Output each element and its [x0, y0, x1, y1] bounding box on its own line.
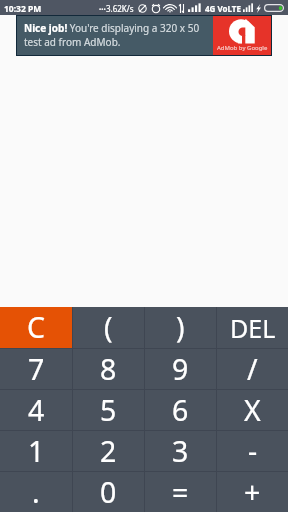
button[interactable]: + [217, 472, 288, 512]
staticText: 4G VoLTE [205, 3, 241, 14]
staticText: test ad from AdMob. [24, 35, 121, 49]
staticText: 10:32 PM [4, 3, 42, 15]
staticText: ) [176, 308, 185, 347]
staticText: . [32, 473, 40, 512]
button[interactable]: 5 [73, 390, 144, 430]
staticText: 4 [28, 391, 45, 430]
staticText: 6 [172, 391, 189, 430]
button[interactable]: - [217, 431, 288, 471]
staticText: Nice job! You're displaying a 320 x 50 [24, 21, 200, 35]
staticText: + [244, 473, 261, 512]
button[interactable]: 4 [0, 390, 72, 430]
staticText: DEL [230, 311, 276, 345]
staticText: C [27, 308, 46, 347]
button[interactable]: = [145, 472, 216, 512]
button[interactable]: 2 [73, 431, 144, 471]
staticText: ( [104, 308, 113, 347]
staticText: 0 [100, 473, 117, 512]
staticText: 5 [100, 391, 117, 430]
staticText: 3 [172, 432, 189, 471]
button[interactable]: DEL [217, 307, 288, 348]
button[interactable]: Advertisement banner [17, 16, 271, 55]
button[interactable]: . [0, 472, 72, 512]
staticText: X [244, 391, 261, 430]
button[interactable]: C [0, 307, 72, 348]
button[interactable]: / [217, 349, 288, 389]
button[interactable]: 7 [0, 349, 72, 389]
button[interactable]: 8 [73, 349, 144, 389]
button[interactable]: 3 [145, 431, 216, 471]
staticText: 8 [100, 350, 117, 389]
staticText: ... [99, 1, 106, 12]
staticText: 9 [172, 350, 189, 389]
button[interactable]: ( [73, 307, 144, 348]
button[interactable]: 0 [73, 472, 144, 512]
button[interactable]: ) [145, 307, 216, 348]
staticText: 2 [100, 432, 117, 471]
staticText: 1 [28, 432, 45, 471]
staticText: 7 [28, 350, 45, 389]
button[interactable]: 9 [145, 349, 216, 389]
button[interactable]: X [217, 390, 288, 430]
button[interactable]: 1 [0, 431, 72, 471]
staticText: - [248, 432, 258, 471]
staticText: AdMob by Google [217, 44, 268, 52]
button[interactable]: 6 [145, 390, 216, 430]
staticText: / [247, 350, 258, 389]
staticText: 3.62K/s [106, 3, 134, 14]
staticText: = [172, 473, 189, 512]
